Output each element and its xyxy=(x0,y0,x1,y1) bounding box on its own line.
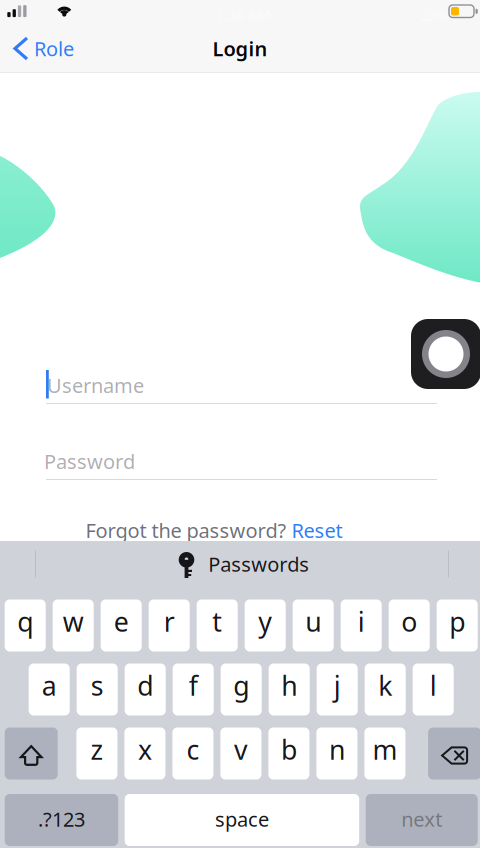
staticText: f xyxy=(189,668,198,703)
staticText: m xyxy=(372,732,397,767)
staticText: h xyxy=(281,668,297,703)
button[interactable]: z xyxy=(76,727,117,779)
staticText: x xyxy=(138,732,152,767)
button[interactable]: s xyxy=(77,663,118,715)
staticText: .?123 xyxy=(38,806,85,832)
button[interactable]: v xyxy=(220,727,261,779)
button[interactable]: c xyxy=(172,727,213,779)
button[interactable]: l xyxy=(413,663,454,715)
staticText: i xyxy=(358,604,365,639)
staticText: Passwords xyxy=(208,551,309,577)
staticText: o xyxy=(401,604,417,639)
button[interactable]: i xyxy=(341,599,382,651)
button[interactable]: p xyxy=(437,599,478,651)
staticText: j xyxy=(334,668,341,703)
button[interactable]: h xyxy=(269,663,310,715)
button[interactable]: next xyxy=(366,794,478,846)
staticText: y xyxy=(258,604,272,639)
staticText: p xyxy=(449,604,465,639)
button[interactable]: e xyxy=(101,599,142,651)
button[interactable]: b xyxy=(268,727,309,779)
staticText: c xyxy=(186,732,199,767)
staticText: s xyxy=(91,668,104,703)
staticText: d xyxy=(137,668,153,703)
button[interactable]: n xyxy=(316,727,357,779)
button[interactable]: w xyxy=(53,599,94,651)
button[interactable]: u xyxy=(293,599,334,651)
button[interactable]: space xyxy=(125,794,359,846)
button[interactable]: x xyxy=(124,727,165,779)
staticText: space xyxy=(215,806,269,832)
staticText: Username xyxy=(47,372,144,399)
staticText: b xyxy=(281,732,297,767)
button[interactable]: Reset xyxy=(291,517,342,544)
staticText: g xyxy=(233,668,249,703)
button[interactable]: d xyxy=(125,663,166,715)
button[interactable]: Shift xyxy=(5,727,58,779)
staticText: Role xyxy=(34,35,74,62)
button[interactable]: g xyxy=(221,663,262,715)
staticText: next xyxy=(401,806,442,832)
staticText: Reset xyxy=(291,517,342,544)
staticText: Login xyxy=(212,35,267,62)
button[interactable]: m xyxy=(364,727,405,779)
button[interactable]: Delete xyxy=(428,727,480,779)
staticText: k xyxy=(378,668,392,703)
staticText: n xyxy=(329,732,345,767)
staticText: a xyxy=(42,668,57,703)
button[interactable]: Role xyxy=(0,24,110,73)
button[interactable]: y xyxy=(245,599,286,651)
button[interactable]: q xyxy=(5,599,46,651)
button[interactable]: o xyxy=(389,599,430,651)
staticText: q xyxy=(17,604,33,639)
button[interactable]: f xyxy=(173,663,214,715)
button[interactable]: r xyxy=(149,599,190,651)
staticText: Password xyxy=(44,448,135,475)
staticText: u xyxy=(305,604,321,639)
button[interactable]: a xyxy=(29,663,70,715)
staticText: v xyxy=(234,732,248,767)
staticText: t xyxy=(212,604,222,639)
staticText: r xyxy=(164,604,175,639)
staticText: e xyxy=(114,604,129,639)
staticText: l xyxy=(430,668,437,703)
button[interactable]: .?123 xyxy=(5,794,118,846)
staticText: w xyxy=(63,604,84,639)
button[interactable]: k xyxy=(365,663,406,715)
button[interactable]: t xyxy=(197,599,238,651)
staticText: Forgot the password? xyxy=(85,517,291,544)
staticText: z xyxy=(90,732,103,767)
button[interactable]: j xyxy=(317,663,358,715)
button[interactable]: Passwords xyxy=(134,542,354,586)
